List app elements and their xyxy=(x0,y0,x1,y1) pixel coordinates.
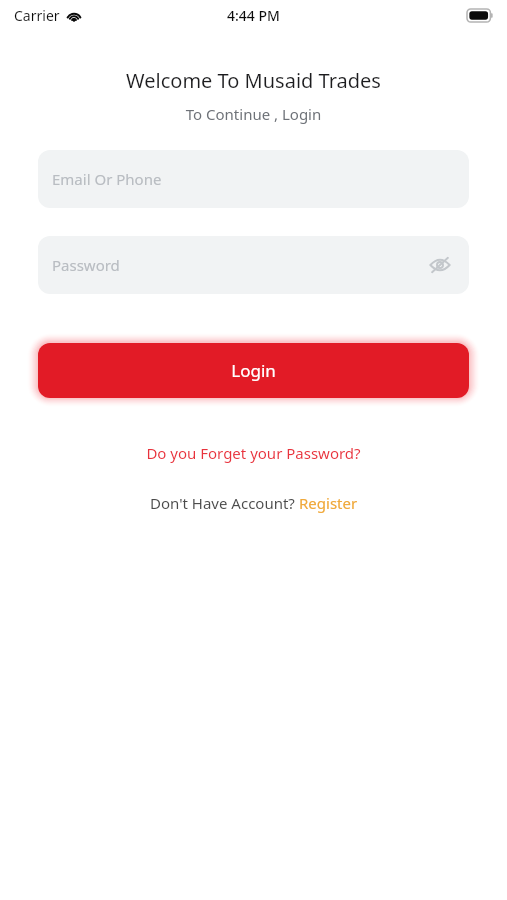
staticText: Email Or Phone xyxy=(52,169,162,189)
staticText: Login xyxy=(231,359,276,382)
button[interactable]: Email Or Phone xyxy=(38,150,469,208)
button[interactable]: Do you Forget your Password? xyxy=(0,439,507,467)
staticText: Carrier xyxy=(14,6,60,25)
button[interactable]: Password xyxy=(38,236,469,294)
staticText: Do you Forget your Password? xyxy=(146,443,361,463)
staticText: Password xyxy=(52,255,120,275)
staticText: To Continue , Login xyxy=(0,104,507,124)
staticText: Register xyxy=(299,493,358,513)
button[interactable]: Toggle password visibility xyxy=(425,250,455,280)
button[interactable]: Register xyxy=(299,493,358,513)
staticText: Welcome To Musaid Trades xyxy=(0,67,507,94)
staticText: 4:44 PM xyxy=(227,6,280,25)
staticText: Don't Have Account? xyxy=(150,493,299,513)
button[interactable]: Login xyxy=(38,343,469,398)
